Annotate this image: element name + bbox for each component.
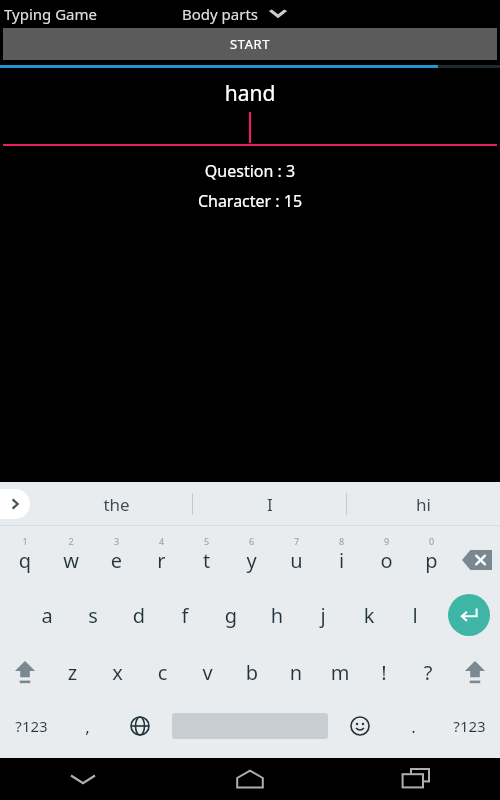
staticText: 1 xyxy=(2,535,48,547)
staticText: g xyxy=(208,602,254,629)
staticText: c xyxy=(140,659,185,686)
button[interactable]: g xyxy=(208,586,254,644)
button[interactable]: . xyxy=(388,700,438,752)
staticText: r xyxy=(139,547,184,574)
staticText: ?123 xyxy=(15,716,48,736)
button[interactable]: Hide keyboard xyxy=(0,758,166,800)
staticText: v xyxy=(185,659,230,686)
staticText: hand xyxy=(0,79,500,108)
button[interactable]: Shift xyxy=(0,644,50,700)
staticText: ! xyxy=(362,659,406,686)
staticText: w xyxy=(48,547,94,574)
button[interactable]: ! xyxy=(362,644,406,700)
staticText: 2 xyxy=(48,535,94,547)
button[interactable]: Body parts xyxy=(180,4,291,24)
staticText: ?123 xyxy=(453,716,486,736)
staticText: k xyxy=(346,602,392,629)
button[interactable]: START xyxy=(3,28,497,60)
button[interactable]: 4 xyxy=(139,526,184,586)
staticText: e xyxy=(94,547,139,574)
staticText: I xyxy=(267,493,273,516)
staticText: o xyxy=(364,547,409,574)
button[interactable]: z xyxy=(50,644,95,700)
staticText: d xyxy=(116,602,162,629)
staticText: . xyxy=(411,715,416,738)
button[interactable]: Home xyxy=(166,758,333,800)
staticText: 6 xyxy=(229,535,274,547)
button[interactable]: 7 xyxy=(274,526,319,586)
button[interactable]: 3 xyxy=(94,526,139,586)
button[interactable]: I xyxy=(193,482,346,526)
staticText: 0 xyxy=(409,535,454,547)
staticText: hi xyxy=(416,493,431,516)
button[interactable]: c xyxy=(140,644,185,700)
button[interactable]: 1 xyxy=(2,526,48,586)
button[interactable]: , xyxy=(62,700,112,752)
button[interactable]: 0 xyxy=(409,526,454,586)
button[interactable]: x xyxy=(95,644,140,700)
button[interactable]: Expand suggestions xyxy=(0,489,30,519)
button[interactable]: Shift xyxy=(450,644,500,700)
staticText: Question : 3 xyxy=(0,160,500,182)
staticText: Typing Game xyxy=(4,4,98,24)
staticText: 9 xyxy=(364,535,409,547)
button[interactable]: Backspace xyxy=(454,526,500,586)
button[interactable]: Emoji xyxy=(332,700,388,752)
button[interactable]: s xyxy=(70,586,116,644)
staticText: z xyxy=(50,659,95,686)
button[interactable]: ?123 xyxy=(0,700,62,752)
button[interactable]: j xyxy=(300,586,346,644)
button[interactable]: ?123 xyxy=(438,700,500,752)
staticText: 3 xyxy=(94,535,139,547)
staticText: j xyxy=(300,602,346,629)
staticText: b xyxy=(230,659,274,686)
button[interactable]: 6 xyxy=(229,526,274,586)
staticText: l xyxy=(392,602,438,629)
button[interactable]: hi xyxy=(347,482,500,526)
staticText: x xyxy=(95,659,140,686)
button[interactable]: l xyxy=(392,586,438,644)
button[interactable]: a xyxy=(24,586,70,644)
button[interactable]: h xyxy=(254,586,300,644)
button[interactable]: 2 xyxy=(48,526,94,586)
button[interactable]: v xyxy=(185,644,230,700)
button[interactable]: 8 xyxy=(319,526,364,586)
staticText: Body parts xyxy=(182,4,259,24)
button[interactable]: m xyxy=(318,644,362,700)
staticText: , xyxy=(85,715,90,738)
staticText: s xyxy=(70,602,116,629)
staticText: n xyxy=(274,659,318,686)
staticText: 4 xyxy=(139,535,184,547)
staticText: f xyxy=(162,602,208,629)
button[interactable]: ? xyxy=(406,644,450,700)
button[interactable]: Enter xyxy=(438,586,500,644)
staticText: Character : 15 xyxy=(0,190,500,212)
staticText: u xyxy=(274,547,319,574)
staticText: q xyxy=(2,547,48,574)
staticText: a xyxy=(24,602,70,629)
staticText: the xyxy=(103,493,130,516)
staticText: h xyxy=(254,602,300,629)
button[interactable]: Recent apps xyxy=(333,758,500,800)
staticText: 7 xyxy=(274,535,319,547)
button[interactable]: d xyxy=(116,586,162,644)
button[interactable]: f xyxy=(162,586,208,644)
staticText: p xyxy=(409,547,454,574)
staticText: ? xyxy=(406,659,450,686)
button[interactable]: k xyxy=(346,586,392,644)
staticText: m xyxy=(318,659,362,686)
button[interactable]: Change language xyxy=(112,700,168,752)
button[interactable]: 5 xyxy=(184,526,229,586)
staticText: 5 xyxy=(184,535,229,547)
button[interactable]: the xyxy=(40,482,192,526)
staticText: t xyxy=(184,547,229,574)
staticText: y xyxy=(229,547,274,574)
button[interactable]: b xyxy=(230,644,274,700)
staticText: START xyxy=(230,35,271,53)
staticText: 8 xyxy=(319,535,364,547)
button[interactable]: n xyxy=(274,644,318,700)
button[interactable]: 9 xyxy=(364,526,409,586)
staticText: i xyxy=(319,547,364,574)
